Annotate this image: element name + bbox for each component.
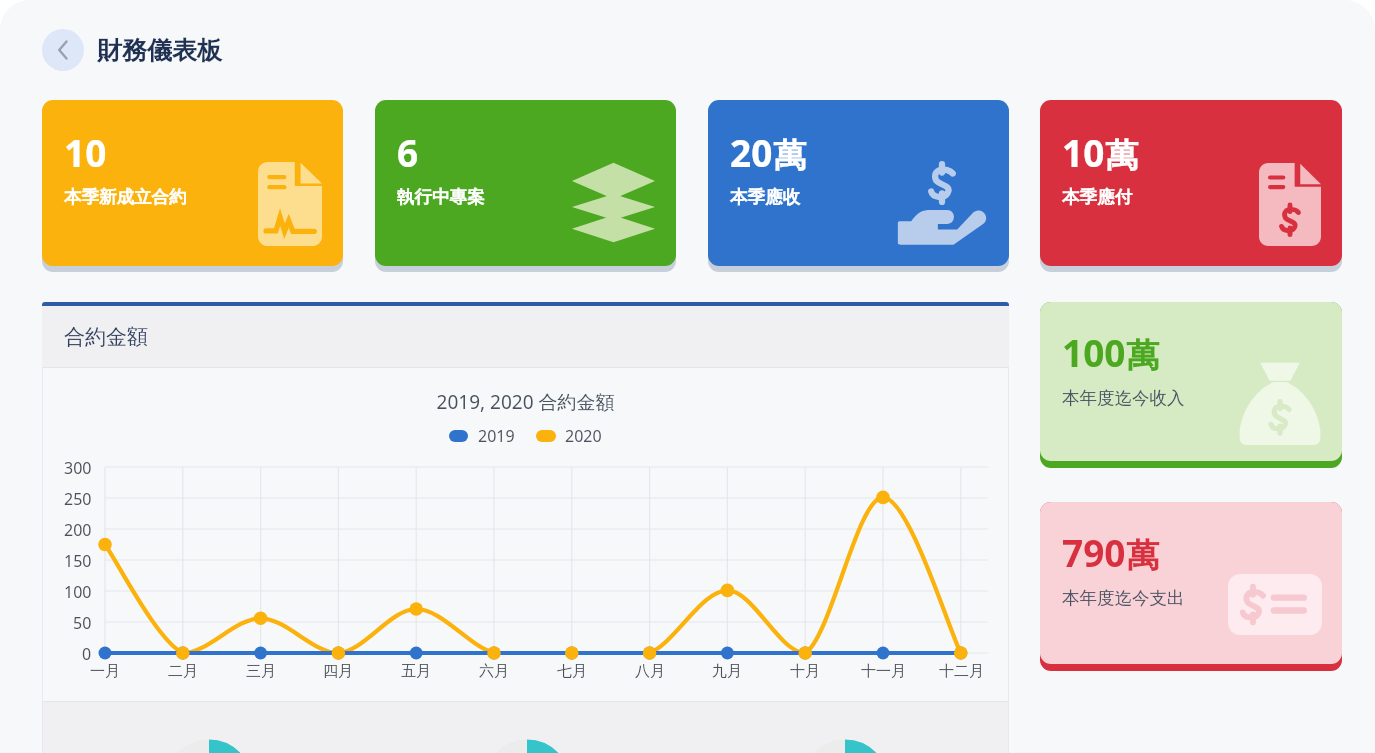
staticText: 200 [64, 519, 92, 541]
button[interactable]: 790 [1040, 502, 1342, 664]
button[interactable]: 20 [708, 100, 1009, 266]
staticText: 四月 [323, 662, 353, 681]
staticText: 2019 [478, 425, 515, 447]
staticText: 五月 [401, 662, 431, 681]
staticText: 財務儀表板 [97, 35, 222, 66]
button[interactable]: 6 [375, 100, 676, 266]
staticText: 0 [82, 643, 92, 665]
staticText: 250 [64, 488, 92, 510]
staticText: 七月 [557, 662, 587, 681]
staticText: 20 [730, 127, 773, 177]
staticText: 150 [64, 550, 92, 572]
button[interactable]: 10 [42, 100, 343, 266]
staticText: 2020 [565, 425, 602, 447]
staticText: 50 [73, 612, 92, 634]
button[interactable]: 10 [1040, 100, 1342, 266]
staticText: 本季應收 [730, 186, 800, 208]
staticText: 執行中專案 [397, 186, 485, 208]
staticText: 6 [397, 127, 419, 177]
staticText: 萬 [773, 135, 806, 177]
staticText: 九月 [712, 662, 742, 681]
staticText: 萬 [1126, 335, 1159, 377]
staticText: 二月 [168, 662, 198, 681]
staticText: 十一月 [861, 662, 906, 681]
staticText: 300 [64, 457, 92, 479]
staticText: 本年度迄今收入 [1062, 387, 1185, 409]
staticText: 合約金額 [64, 324, 148, 350]
staticText: 八月 [635, 662, 665, 681]
staticText: 100 [1062, 327, 1126, 377]
staticText: 本季新成立合約 [64, 186, 187, 208]
staticText: 三月 [246, 662, 276, 681]
staticText: 十月 [790, 662, 820, 681]
staticText: 10 [64, 127, 107, 177]
staticText: 本季應付 [1062, 186, 1132, 208]
staticText: 萬 [1105, 135, 1138, 177]
staticText: 790 [1062, 527, 1126, 577]
staticText: 六月 [479, 662, 509, 681]
staticText: 萬 [1126, 535, 1159, 577]
staticText: 2019, 2020 合約金額 [43, 389, 1008, 415]
staticText: 十二月 [939, 662, 984, 681]
button[interactable]: 100 [1040, 302, 1342, 461]
button[interactable]: Back [42, 29, 84, 71]
staticText: 10 [1062, 127, 1105, 177]
staticText: 本年度迄今支出 [1062, 587, 1185, 609]
staticText: 一月 [90, 662, 120, 681]
staticText: 100 [64, 581, 92, 603]
